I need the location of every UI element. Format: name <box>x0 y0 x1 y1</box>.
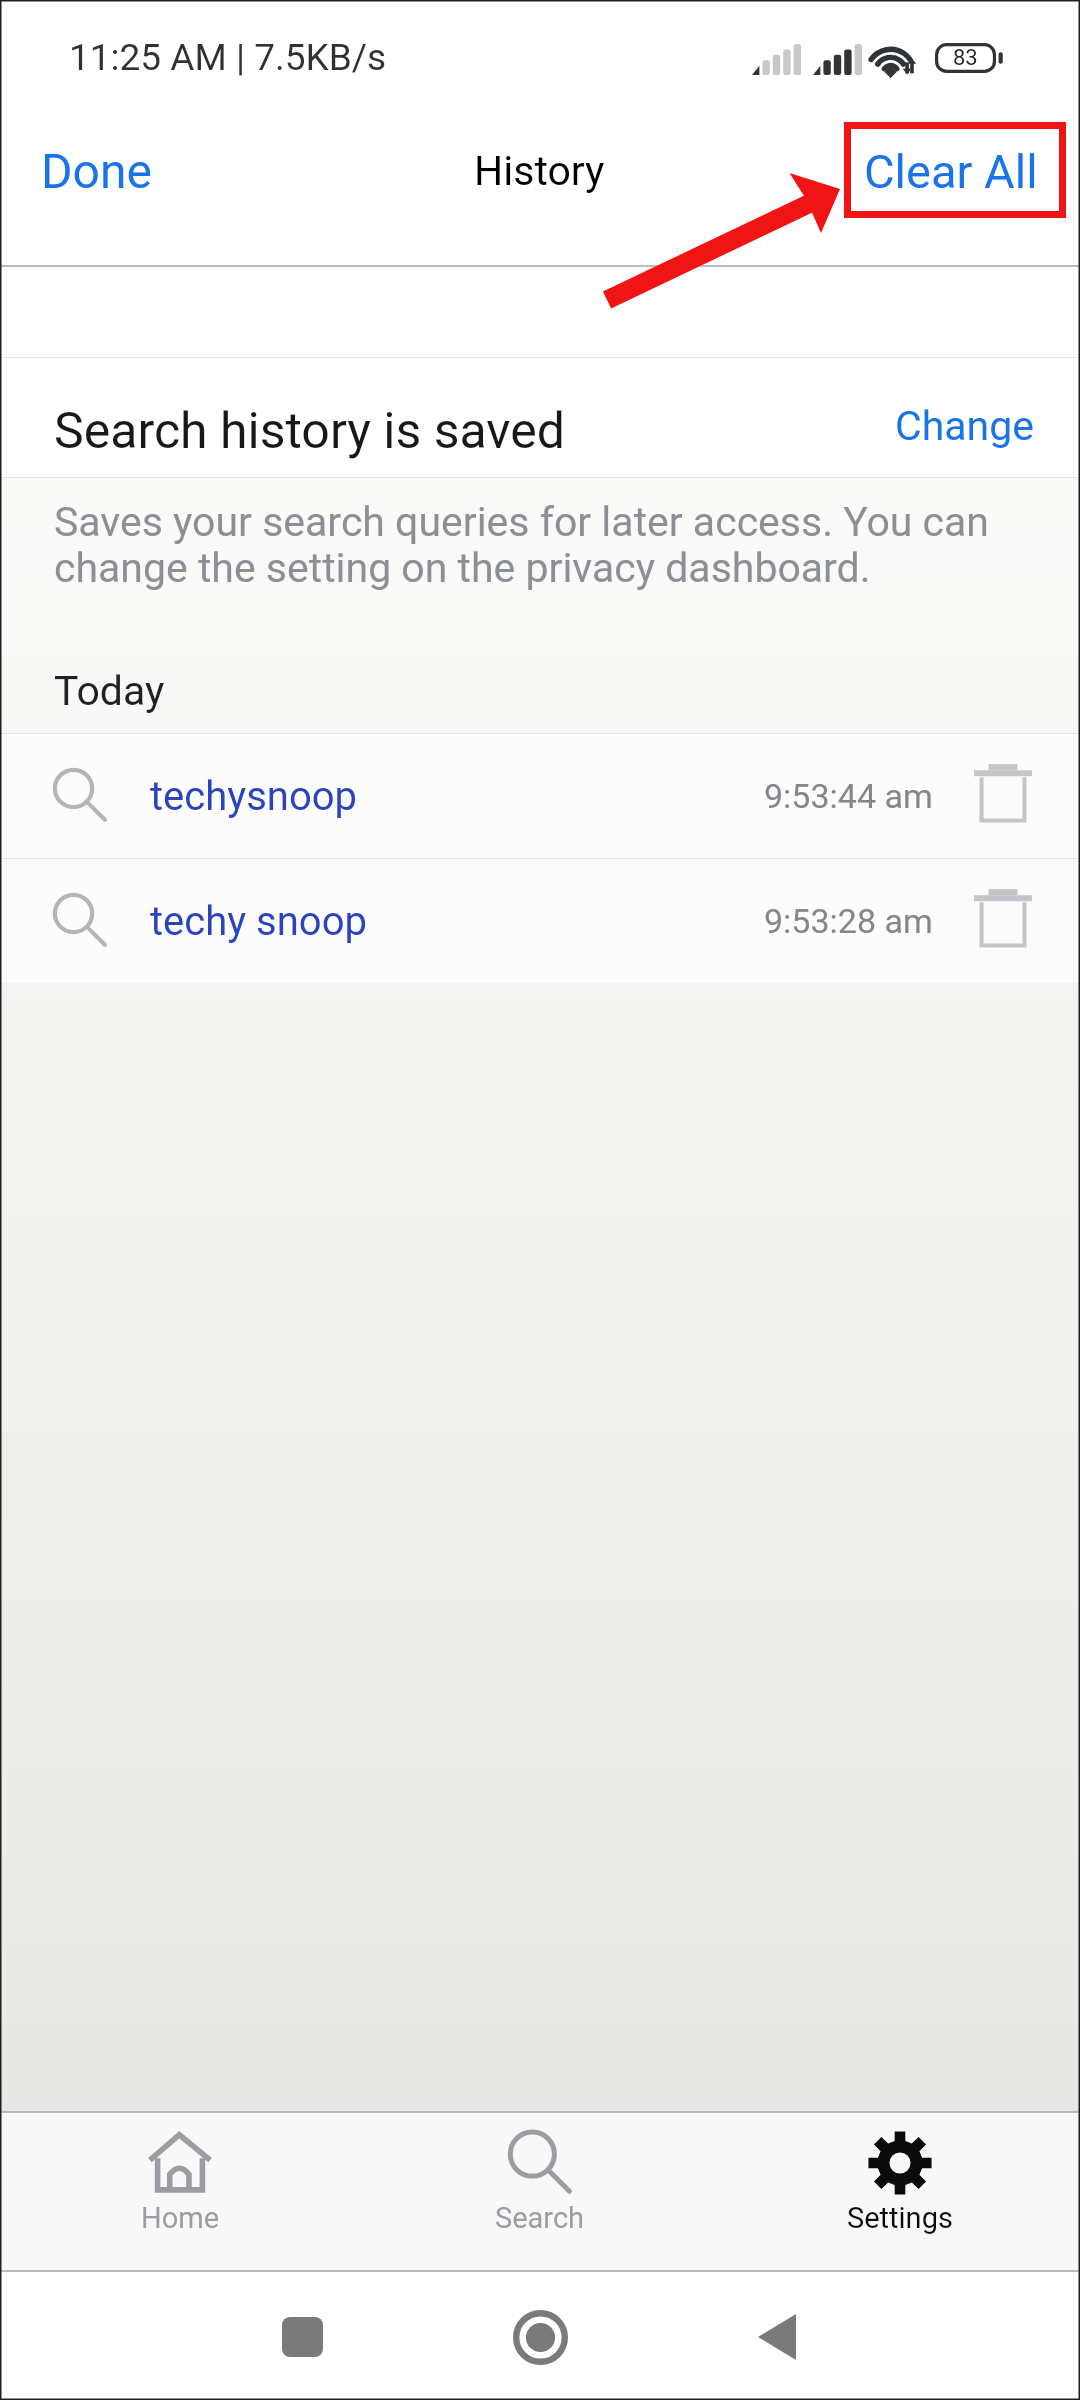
staticText: Search <box>495 2201 585 2235</box>
button[interactable]: Home <box>470 2276 610 2398</box>
staticText: 9:53:28 am <box>764 901 933 941</box>
button[interactable]: techy snoop <box>0 859 1080 983</box>
button[interactable]: Change <box>865 384 1080 468</box>
staticText: 83 <box>953 45 978 71</box>
button[interactable]: Delete <box>933 734 1080 858</box>
staticText: Today <box>54 667 165 715</box>
button[interactable]: Clear All <box>824 128 1080 215</box>
button[interactable]: Home <box>0 2113 360 2270</box>
staticText: 9:53:44 am <box>764 776 933 816</box>
staticText: Search history is saved <box>54 402 565 461</box>
staticText: techysnoop <box>150 773 358 820</box>
button[interactable]: Delete <box>933 859 1080 983</box>
button[interactable]: techysnoop <box>0 734 1080 858</box>
button[interactable]: Search <box>360 2113 720 2270</box>
staticText: Home <box>141 2201 220 2235</box>
button[interactable]: Settings <box>720 2113 1080 2270</box>
staticText: History <box>474 147 605 195</box>
staticText: Clear All <box>864 144 1038 199</box>
staticText: Done <box>41 143 152 199</box>
staticText: Saves your search queries for later acce… <box>54 498 990 592</box>
button[interactable]: Back <box>707 2276 847 2398</box>
button[interactable]: Done <box>0 127 192 215</box>
staticText: 11:25 AM | 7.5KB/s <box>69 36 387 79</box>
button[interactable]: Recents <box>232 2276 372 2398</box>
staticText: techy snoop <box>150 898 367 945</box>
staticText: Settings <box>847 2201 953 2235</box>
staticText: Change <box>895 402 1034 450</box>
